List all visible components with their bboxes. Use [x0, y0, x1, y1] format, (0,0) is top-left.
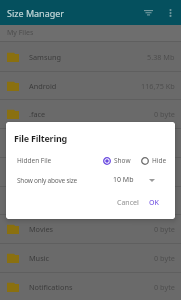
- staticText: .face: [29, 109, 46, 119]
- button[interactable]: DCIM: [0, 157, 181, 186]
- button[interactable]: Notifications: [0, 272, 181, 300]
- button[interactable]: Movies: [0, 214, 181, 243]
- staticText: 0 byte: [154, 224, 175, 234]
- staticText: Notifications: [29, 282, 73, 292]
- staticText: Android: [29, 81, 57, 91]
- button[interactable]: Hide: [141, 156, 167, 165]
- staticText: 0 byte: [154, 109, 175, 119]
- button[interactable]: Cancel: [112, 195, 144, 211]
- staticText: Hidden File: [17, 156, 52, 165]
- button[interactable]: Alarms: [0, 128, 181, 157]
- button[interactable]: More options: [159, 2, 181, 24]
- staticText: 0 byte: [154, 196, 175, 206]
- button[interactable]: .face: [0, 99, 181, 128]
- staticText: Samsung: [29, 52, 61, 62]
- staticText: OK: [149, 198, 159, 208]
- staticText: 10 Mb: [113, 175, 134, 185]
- button[interactable]: Download: [0, 186, 181, 215]
- button[interactable]: OK: [144, 195, 164, 211]
- staticText: 116,75 Kb: [141, 81, 175, 91]
- button[interactable]: Show: [103, 156, 131, 165]
- staticText: Alarms: [29, 138, 53, 148]
- button[interactable]: Samsung: [0, 42, 181, 71]
- button[interactable]: Music: [0, 243, 181, 272]
- staticText: 0 byte: [154, 282, 175, 292]
- button[interactable]: Filter: [137, 2, 159, 24]
- staticText: Show only above size: [17, 176, 78, 185]
- staticText: 0 byte: [154, 253, 175, 263]
- staticText: Show: [114, 156, 131, 165]
- staticText: Size Manager: [7, 7, 65, 19]
- staticText: Hide: [152, 156, 167, 165]
- staticText: My Files: [7, 28, 34, 38]
- button[interactable]: Android: [0, 71, 181, 100]
- button[interactable]: 10 Mb: [113, 172, 167, 188]
- staticText: Music: [29, 253, 50, 263]
- staticText: Cancel: [117, 198, 139, 208]
- staticText: File Filtering: [14, 132, 68, 144]
- staticText: Movies: [29, 224, 54, 234]
- staticText: 5.38 Mb: [147, 52, 175, 62]
